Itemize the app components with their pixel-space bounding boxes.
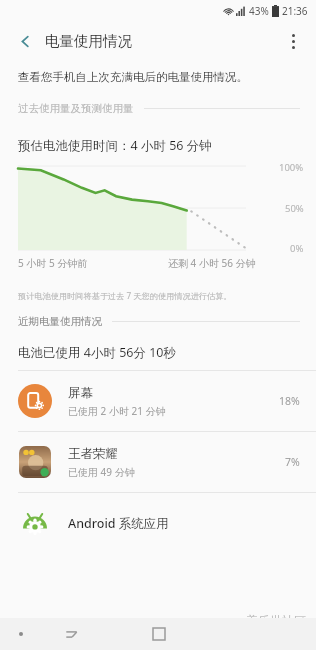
staticText: 已使用 2 小时 21 分钟 (68, 404, 166, 418)
button[interactable]: 王者荣耀 (0, 432, 316, 492)
staticText: 50% (285, 202, 304, 215)
staticText: 查看您手机自上次充满电后的电量使用情况。 (18, 70, 248, 84)
staticText: 0% (290, 242, 304, 255)
staticText: 屏幕 (68, 385, 93, 401)
staticText: 已使用 49 分钟 (68, 465, 135, 479)
staticText: 电池已使用 4小时 56分 10秒 (18, 344, 177, 361)
button[interactable]: Back (10, 26, 40, 56)
button[interactable]: Recents (10, 623, 32, 645)
button[interactable]: More options (278, 26, 308, 56)
staticText: 21:36 (282, 4, 308, 18)
staticText: 43% (249, 4, 269, 18)
button[interactable]: Back (58, 621, 84, 647)
staticText: 100% (279, 161, 304, 174)
staticText: 7% (285, 455, 300, 469)
staticText: 预计电池使用时间将基于过去 7 天您的使用情况进行估算。 (18, 290, 232, 301)
staticText: 还剩 4 小时 56 分钟 (168, 256, 256, 270)
button[interactable]: Home (146, 621, 172, 647)
staticText: 电量使用情况 (45, 32, 132, 50)
staticText: 近期电量使用情况 (18, 315, 102, 328)
staticText: 18% (279, 394, 300, 408)
staticText: 5 小时 5 分钟前 (18, 256, 88, 270)
staticText: 过去使用量及预测使用量 (18, 102, 134, 115)
staticText: 盖乐世社区 (246, 613, 306, 628)
button[interactable]: 屏幕 (0, 371, 316, 431)
staticText: 预估电池使用时间：4 小时 56 分钟 (18, 137, 212, 154)
staticText: 王者荣耀 (68, 446, 118, 462)
button[interactable]: Android 系统应用 (0, 493, 316, 553)
staticText: Android 系统应用 (68, 515, 169, 532)
